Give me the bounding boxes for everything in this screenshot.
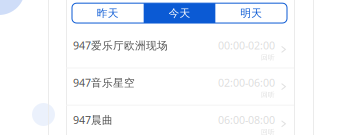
staticText: 明天 [240,6,262,20]
staticText: 今天 [168,6,190,20]
staticText: 回听 [261,128,275,135]
button[interactable]: 947音乐星空 [66,68,294,105]
staticText: 947爱乐厅欧洲现场 [73,38,168,52]
staticText: 00:00-02:00 [218,38,275,52]
staticText: 回听 [261,91,275,99]
button[interactable]: 昨天 [72,3,144,23]
staticText: 947晨曲 [73,113,113,127]
staticText: 947音乐星空 [73,75,135,90]
button[interactable]: 947晨曲 [66,106,294,135]
staticText: 昨天 [97,6,119,20]
button[interactable]: 947爱乐厅欧洲现场 [66,31,294,67]
staticText: 回听 [261,53,275,62]
staticText: 02:00-06:00 [218,75,275,90]
button[interactable]: 今天 [144,3,215,23]
staticText: 06:00-08:00 [218,113,275,127]
button[interactable]: 明天 [215,3,287,23]
